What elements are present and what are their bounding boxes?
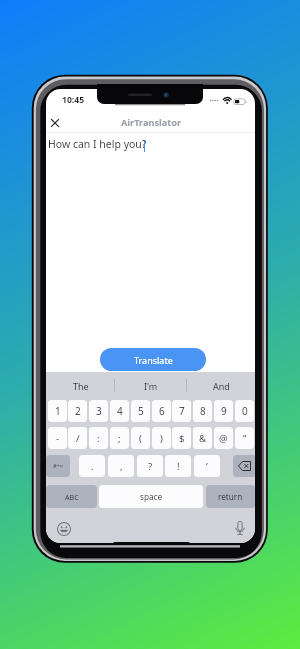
- button[interactable]: 4: [110, 400, 129, 422]
- button[interactable]: I'm: [115, 372, 187, 400]
- button[interactable]: Translate: [100, 348, 206, 371]
- staticText: 1: [55, 404, 61, 418]
- staticText: How can I help you?: [48, 137, 147, 151]
- button[interactable]: 9: [214, 400, 233, 422]
- staticText: $: [179, 432, 185, 445]
- staticText: ’: [206, 460, 208, 473]
- button[interactable]: -: [48, 427, 67, 449]
- button[interactable]: $: [172, 427, 191, 449]
- staticText: ”: [243, 432, 247, 445]
- staticText: ): [160, 432, 163, 445]
- staticText: 0: [242, 404, 248, 418]
- button[interactable]: ?: [137, 455, 163, 477]
- button[interactable]: (: [131, 427, 150, 449]
- staticText: 3: [96, 404, 102, 418]
- staticText: ?: [148, 460, 153, 473]
- button[interactable]: 6: [152, 400, 171, 422]
- staticText: 4: [117, 404, 123, 418]
- button[interactable]: !: [165, 455, 191, 477]
- staticText: space: [140, 491, 163, 502]
- staticText: .: [91, 460, 94, 473]
- button[interactable]: Backspace: [233, 455, 255, 477]
- staticText: /: [76, 432, 80, 445]
- button[interactable]: Close: [46, 112, 66, 134]
- button[interactable]: The: [46, 372, 115, 400]
- staticText: (: [139, 432, 142, 445]
- staticText: 5: [138, 404, 144, 418]
- button[interactable]: @: [214, 427, 233, 449]
- button[interactable]: &: [193, 427, 212, 449]
- button[interactable]: /: [68, 427, 87, 449]
- button[interactable]: 2: [68, 400, 87, 422]
- staticText: return: [218, 491, 243, 502]
- button[interactable]: 8: [193, 400, 212, 422]
- button[interactable]: #+=: [46, 455, 70, 477]
- button[interactable]: .: [79, 455, 105, 477]
- staticText: @: [219, 432, 228, 445]
- button[interactable]: ,: [108, 455, 134, 477]
- staticText: 7: [179, 404, 185, 418]
- staticText: 10:45: [62, 94, 85, 106]
- button[interactable]: ’: [194, 455, 220, 477]
- staticText: The: [73, 380, 89, 392]
- staticText: ;: [118, 432, 121, 445]
- staticText: ABC: [65, 492, 79, 502]
- staticText: 9: [221, 404, 227, 418]
- staticText: !: [177, 460, 180, 473]
- button[interactable]: 1: [48, 400, 67, 422]
- button[interactable]: And: [187, 372, 255, 400]
- staticText: -: [56, 432, 60, 445]
- staticText: 2: [75, 404, 81, 418]
- staticText: I'm: [144, 380, 158, 392]
- button[interactable]: 0: [235, 400, 254, 422]
- button[interactable]: 3: [89, 400, 108, 422]
- staticText: 6: [159, 404, 165, 418]
- staticText: AirTranslator: [121, 116, 182, 129]
- button[interactable]: Voice input: [232, 520, 248, 538]
- button[interactable]: ): [152, 427, 171, 449]
- button[interactable]: ABC: [46, 485, 97, 508]
- staticText: Translate: [134, 354, 173, 366]
- staticText: &: [199, 432, 207, 445]
- button[interactable]: return: [206, 485, 255, 508]
- button[interactable]: 5: [131, 400, 150, 422]
- staticText: #+=: [53, 462, 64, 470]
- staticText: ,: [120, 460, 123, 473]
- button[interactable]: ”: [235, 427, 254, 449]
- button[interactable]: 7: [172, 400, 191, 422]
- staticText: 8: [200, 404, 206, 418]
- button[interactable]: ;: [110, 427, 129, 449]
- button[interactable]: space: [99, 485, 203, 508]
- button[interactable]: Emoji keyboard: [56, 521, 72, 537]
- staticText: :: [97, 432, 100, 445]
- button[interactable]: :: [89, 427, 108, 449]
- staticText: And: [213, 380, 230, 392]
